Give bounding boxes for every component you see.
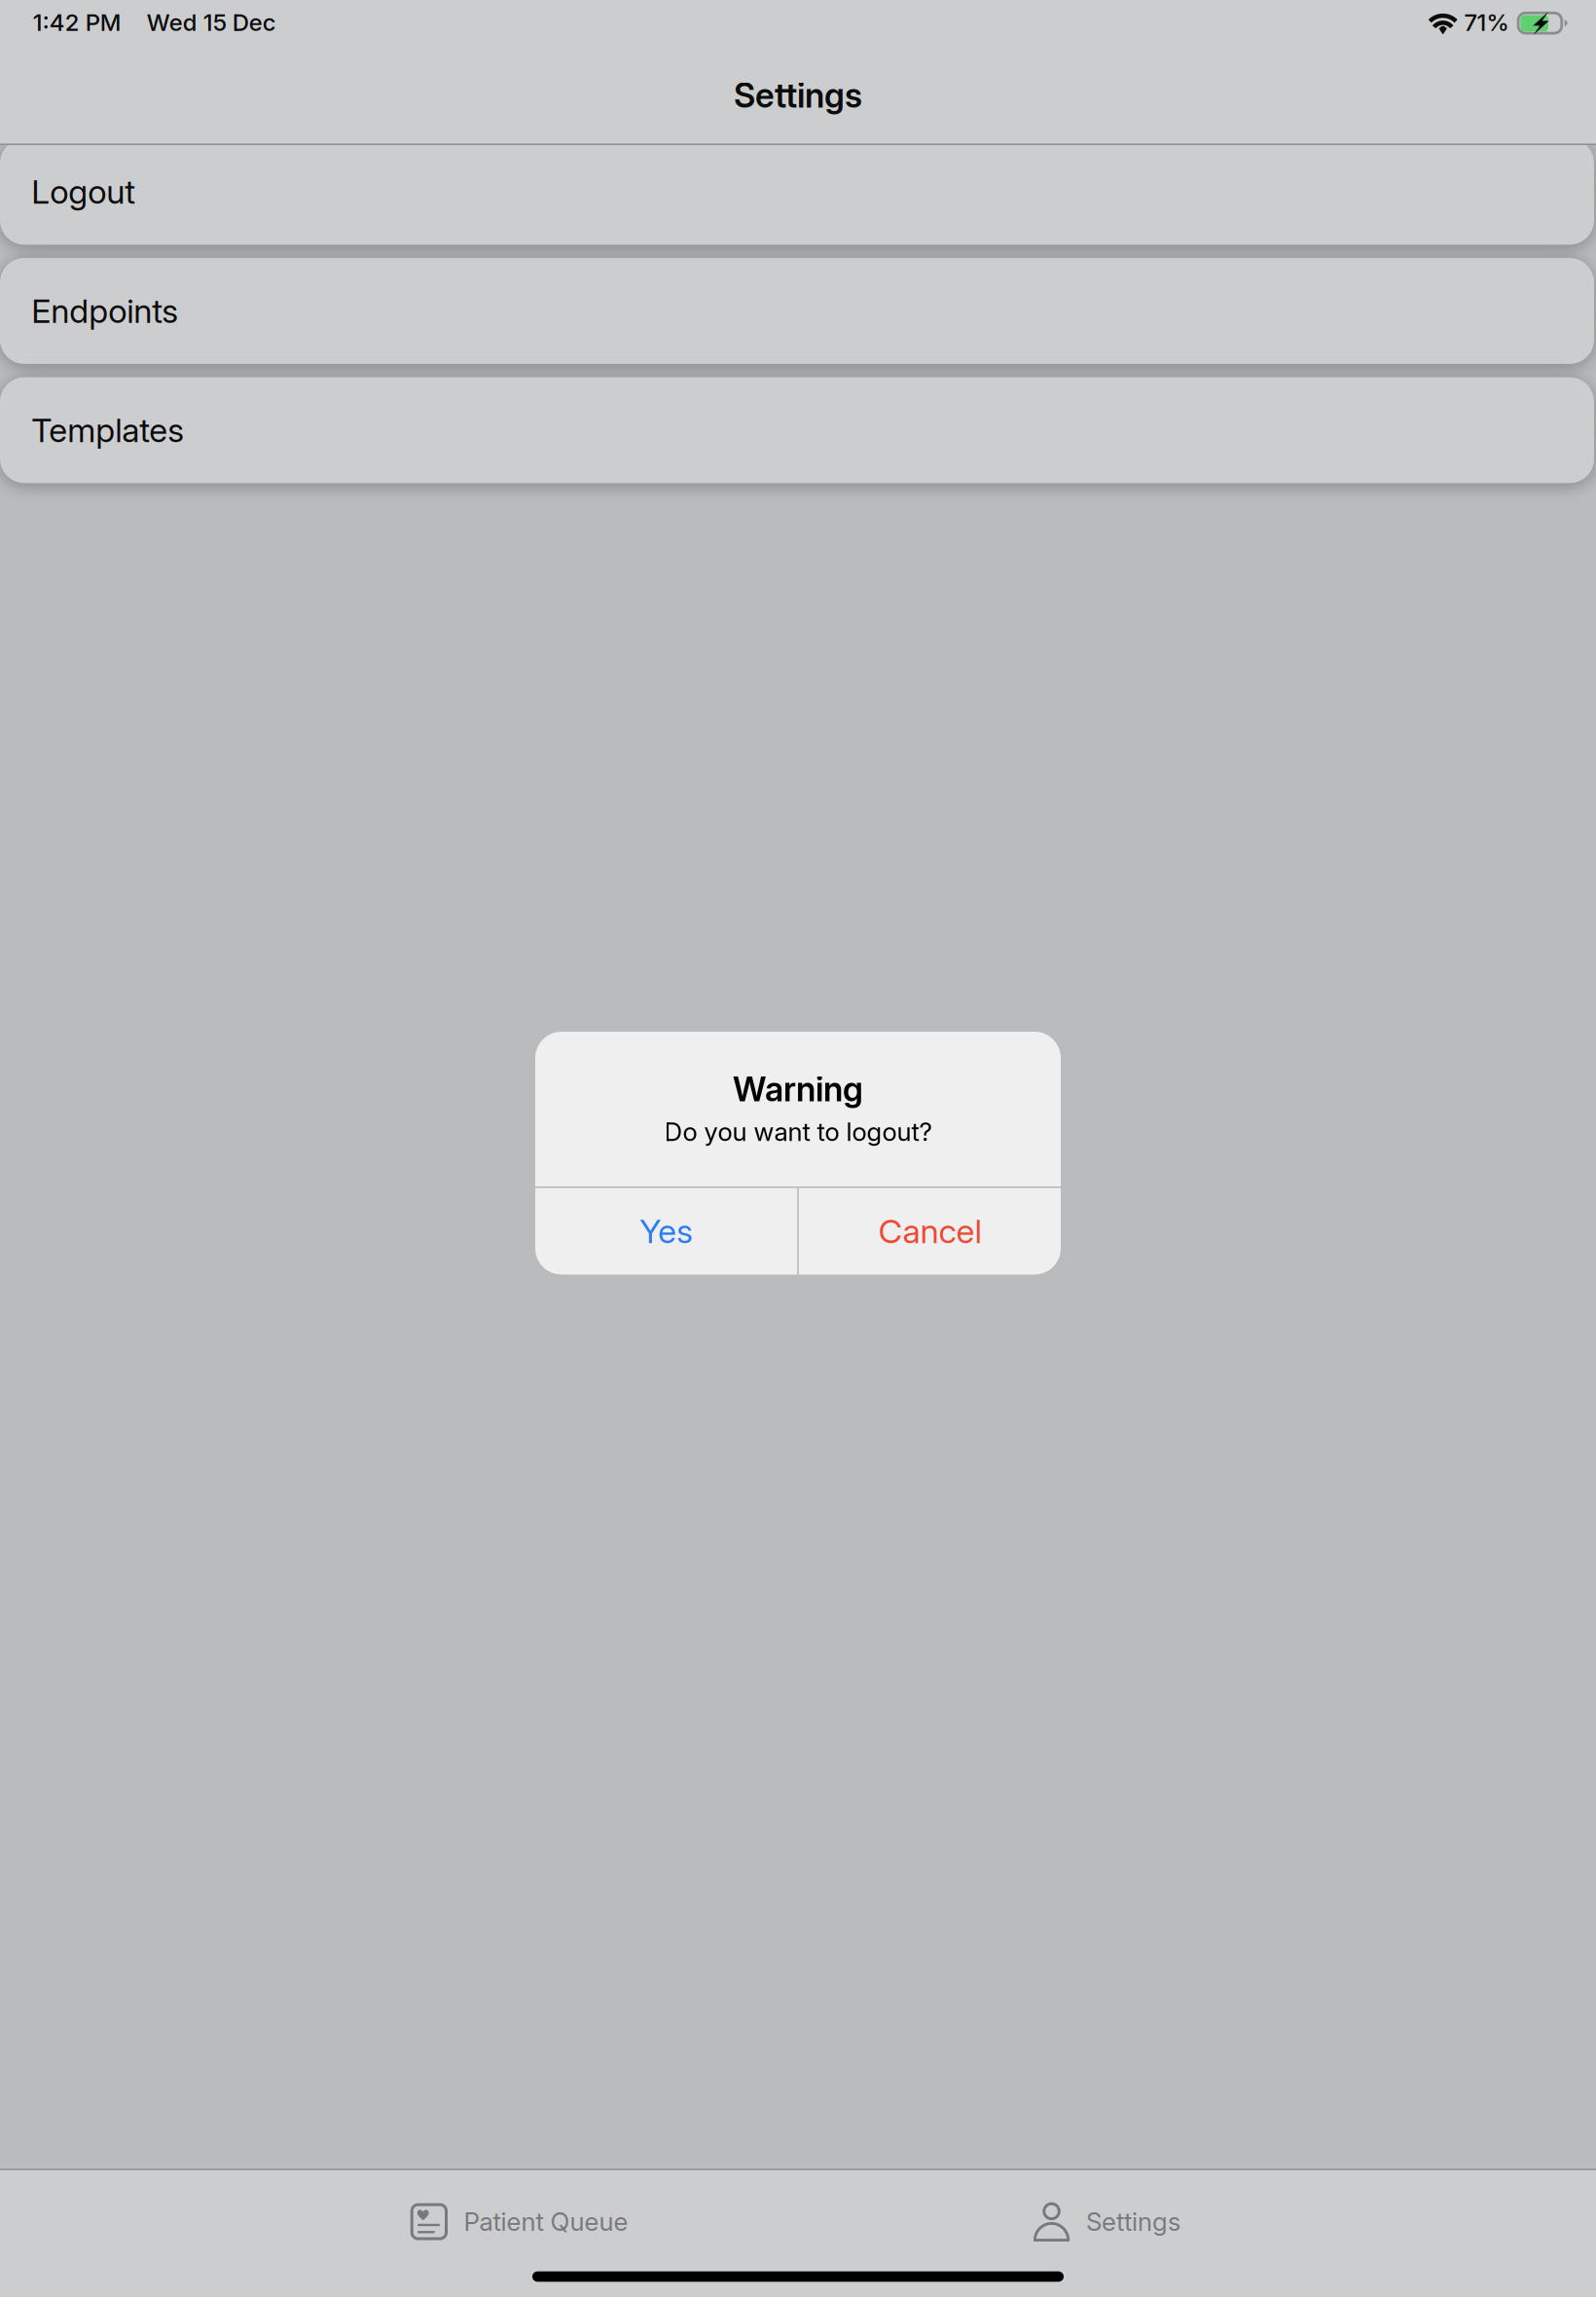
staticText: Logout [31,172,135,212]
button[interactable]: Templates [0,377,1594,483]
staticText: Patient Queue [464,2206,628,2237]
staticText: Wed 15 Dec [147,8,276,36]
staticText: Templates [31,410,184,450]
button[interactable]: Settings [1034,2203,1180,2240]
button[interactable]: Cancel [799,1188,1061,1275]
staticText: Cancel [878,1211,981,1251]
staticText: Yes [639,1211,693,1251]
staticText: Do you want to logout? [664,1116,932,1147]
staticText: Settings [1086,2206,1180,2237]
button[interactable]: Logout [0,139,1594,245]
staticText: 71% [1464,8,1509,36]
button[interactable]: Yes [535,1188,797,1275]
staticText: Settings [734,75,862,116]
staticText: Warning [733,1069,863,1109]
button[interactable]: Endpoints [0,258,1594,364]
staticText: Endpoints [31,291,178,331]
button[interactable]: Patient Queue [410,2203,628,2240]
staticText: 1:42 PM [33,8,121,36]
